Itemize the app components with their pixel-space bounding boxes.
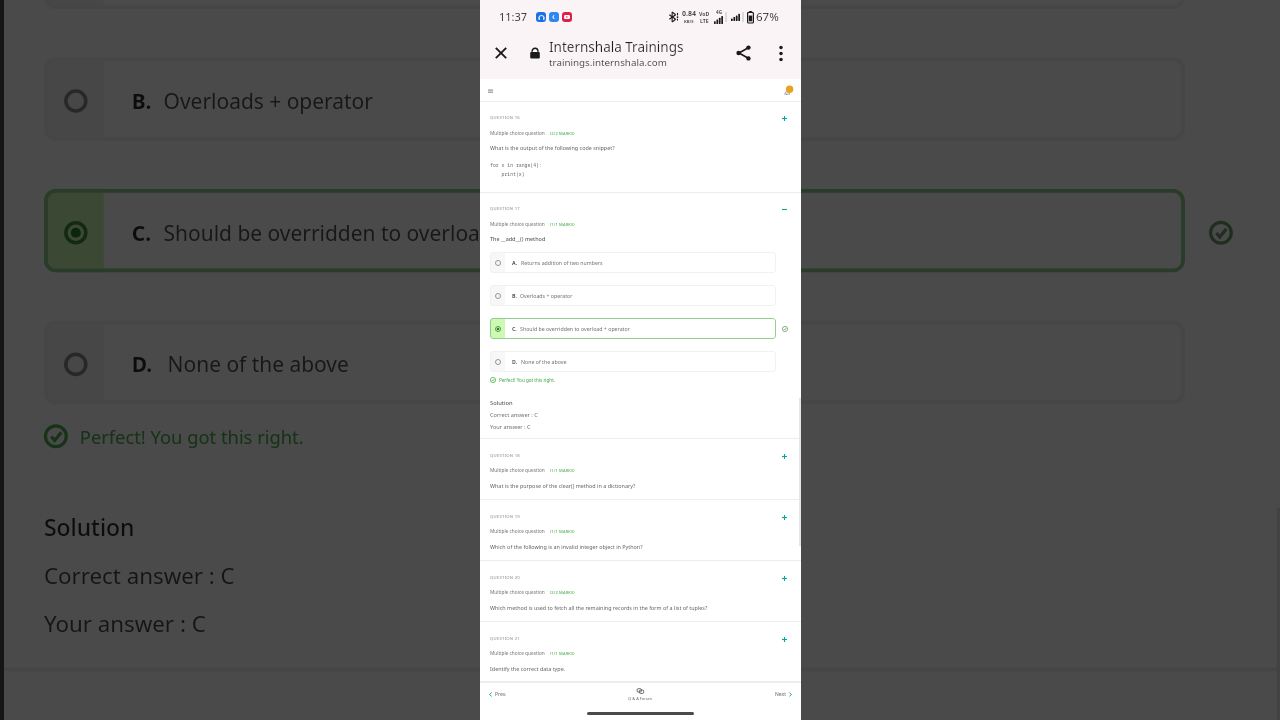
staticText: B. — [132, 85, 152, 113]
staticText: Should be overridden to overload + opera… — [520, 325, 630, 332]
button[interactable]: A. — [490, 252, 776, 273]
staticText: None of the above — [168, 348, 351, 376]
button[interactable]: Q & A Forum — [626, 686, 655, 703]
staticText: Multiple choice question — [490, 130, 545, 137]
staticText: Solution — [44, 512, 136, 544]
staticText: QUESTION 18 — [490, 453, 521, 459]
staticText: None of the above — [521, 358, 567, 365]
button[interactable]: Expand question — [779, 113, 789, 123]
staticText: QUESTION 19 — [490, 514, 521, 520]
staticText: Overloads + operator — [520, 292, 573, 299]
staticText: The __add__() method — [490, 235, 546, 242]
staticText: Perfect! You got this right. — [499, 377, 556, 383]
button[interactable]: Menu — [488, 84, 502, 98]
staticText: 11:37 — [499, 9, 528, 24]
staticText: VoD — [699, 10, 710, 17]
staticText: C. — [512, 325, 517, 332]
staticText: Should be overridden to overload + opera… — [164, 217, 602, 245]
staticText: for x in range(4): — [490, 162, 542, 169]
button[interactable]: Expand question — [779, 512, 789, 522]
staticText: Prev. — [495, 691, 507, 698]
staticText: Multiple choice question — [490, 650, 545, 657]
staticText: (2/2 MARKS) — [550, 590, 575, 596]
staticText: D. — [132, 348, 156, 376]
staticText: (1/1 MARKS) — [550, 651, 575, 657]
staticText: Multiple choice question — [490, 221, 545, 228]
staticText: Perfect! You got this right. — [80, 424, 307, 448]
staticText: Internshala Trainings — [549, 38, 684, 56]
staticText: What is the purpose of the clear() metho… — [490, 482, 636, 489]
staticText: (1/1 MARKS) — [550, 468, 575, 474]
staticText: Multiple choice question — [490, 528, 545, 535]
staticText: (1/1 MARKS) — [550, 529, 575, 535]
staticText: Multiple choice question — [490, 589, 545, 596]
button[interactable]: Expand question — [779, 634, 789, 644]
staticText: LTE — [700, 17, 709, 24]
staticText: Correct answer : C — [44, 560, 235, 592]
staticText: Your answer : C — [44, 608, 207, 640]
button[interactable]: Notifications — [782, 84, 796, 98]
button[interactable]: Share — [729, 39, 757, 67]
staticText: Overloads + operator — [164, 85, 375, 113]
staticText: print(x) — [490, 171, 525, 178]
staticText: Identify the correct data type. — [490, 665, 566, 672]
staticText: Which method is used to fetch all the re… — [490, 604, 708, 611]
staticText: A. — [512, 259, 518, 266]
staticText: 0.84 — [682, 9, 696, 19]
button[interactable]: D. — [490, 351, 776, 372]
staticText: QUESTION 17 — [490, 206, 521, 212]
staticText: D. — [512, 358, 518, 365]
staticText: Correct answer : C — [490, 411, 538, 419]
button[interactable]: Expand question — [779, 573, 789, 583]
staticText: Next — [775, 691, 786, 698]
button[interactable]: D. — [44, 320, 1185, 404]
staticText: Q & A Forum — [628, 696, 653, 701]
button[interactable]: B. — [490, 285, 776, 306]
staticText: Returns addition of two numbers — [521, 259, 603, 266]
staticText: Your answer : C — [490, 423, 531, 431]
button[interactable]: C. — [44, 189, 1185, 273]
staticText: trainings.internshala.com — [549, 56, 667, 69]
staticText: (1/1 MARKS) — [550, 222, 575, 228]
staticText: (2/2 MARKS) — [550, 131, 575, 137]
staticText: 4G — [716, 9, 722, 15]
button[interactable]: Close — [487, 39, 515, 67]
button[interactable]: A. — [44, 0, 1185, 9]
button[interactable]: C. — [490, 318, 776, 339]
button[interactable]: Next — [772, 688, 796, 701]
button[interactable]: Prev. — [485, 688, 510, 701]
staticText: What is the output of the following code… — [490, 144, 615, 151]
button[interactable]: More options — [767, 39, 795, 67]
staticText: QUESTION 21 — [490, 636, 521, 642]
staticText: Solution — [490, 399, 513, 407]
staticText: KB/S — [684, 19, 694, 25]
staticText: C. — [132, 217, 152, 245]
staticText: Multiple choice question — [490, 467, 545, 474]
staticText: B. — [512, 292, 517, 299]
button[interactable]: Collapse question — [779, 204, 789, 214]
button[interactable]: Expand question — [779, 451, 789, 461]
staticText: QUESTION 16 — [490, 115, 521, 121]
staticText: QUESTION 20 — [490, 575, 521, 581]
staticText: 67% — [756, 9, 779, 25]
button[interactable]: B. — [44, 57, 1185, 141]
staticText: Which of the following is an invalid int… — [490, 543, 643, 550]
